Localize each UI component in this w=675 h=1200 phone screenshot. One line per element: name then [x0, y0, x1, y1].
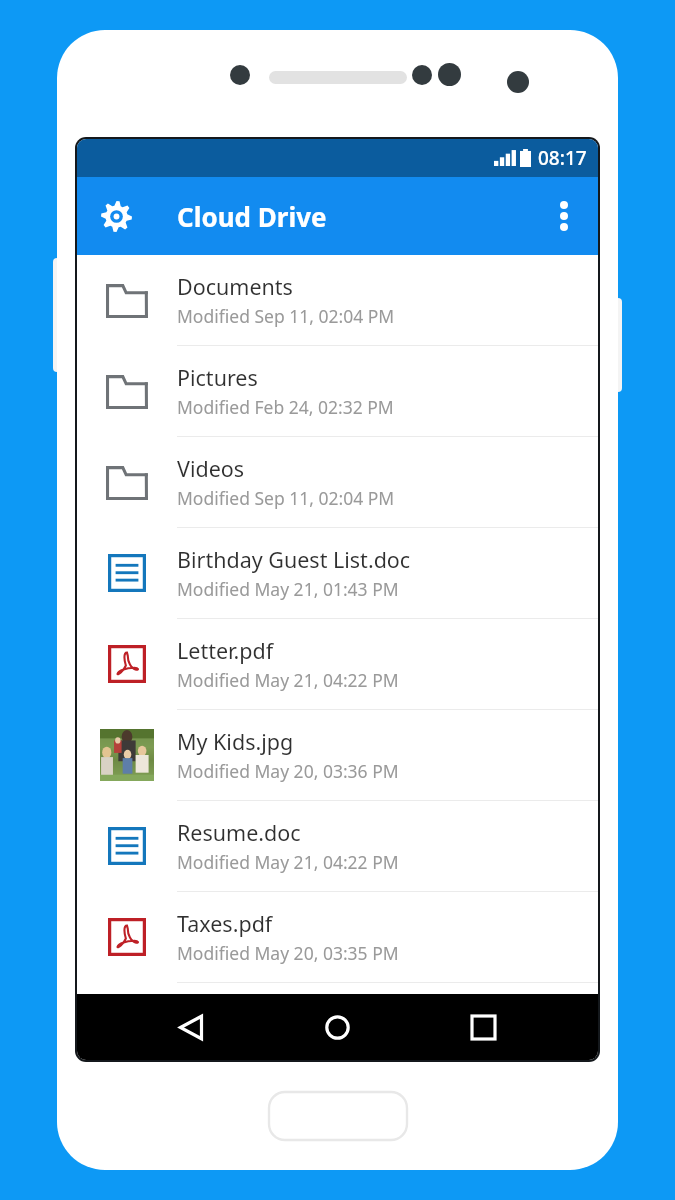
button[interactable]: Settings	[89, 189, 143, 243]
staticText: Birthday Guest List.doc	[177, 545, 411, 574]
staticText: Modified May 21, 04:22 PM	[177, 668, 399, 692]
button[interactable]: Birthday Guest List.doc	[77, 528, 598, 619]
staticText: Cloud Drive	[177, 199, 327, 234]
staticText: Modified Sep 11, 02:04 PM	[177, 486, 395, 510]
button[interactable]: Resume.doc	[77, 801, 598, 892]
staticText: 08:17	[538, 145, 587, 171]
button[interactable]: My Kids.jpg	[77, 710, 598, 801]
staticText: My Kids.jpg	[177, 727, 294, 756]
staticText: Modified May 21, 04:22 PM	[177, 850, 399, 874]
button[interactable]: Videos	[77, 437, 598, 528]
button[interactable]: Recent apps	[410, 994, 556, 1060]
button[interactable]: Pictures	[77, 346, 598, 437]
button[interactable]: Back	[119, 994, 264, 1060]
staticText: Modified May 20, 03:35 PM	[177, 941, 399, 965]
staticText: Documents	[177, 272, 293, 301]
staticText: Letter.pdf	[177, 636, 274, 665]
staticText: Resume.doc	[177, 818, 301, 847]
button[interactable]: Letter.pdf	[77, 619, 598, 710]
staticText: Modified May 21, 01:43 PM	[177, 577, 399, 601]
staticText: Modified May 20, 03:36 PM	[177, 759, 399, 783]
staticText: Modified Feb 24, 02:32 PM	[177, 395, 394, 419]
button[interactable]: Taxes.pdf	[77, 892, 598, 983]
staticText: Modified Sep 11, 02:04 PM	[177, 304, 395, 328]
staticText: Taxes.pdf	[177, 909, 273, 938]
button[interactable]: Home	[264, 994, 410, 1060]
button[interactable]: Documents	[77, 255, 598, 346]
staticText: Pictures	[177, 363, 258, 392]
button[interactable]: More options	[538, 190, 590, 242]
staticText: Videos	[177, 454, 245, 483]
